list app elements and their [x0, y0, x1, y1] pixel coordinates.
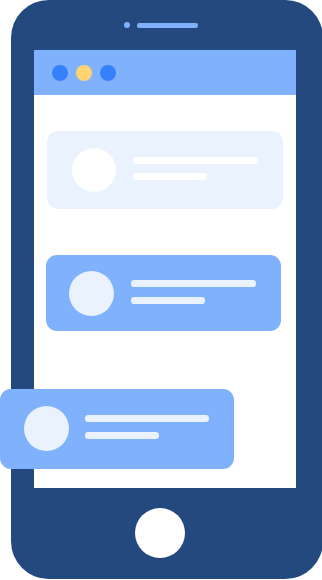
button[interactable]: List item three — [0, 389, 234, 469]
button[interactable]: List item two — [46, 255, 281, 331]
button[interactable]: List item one — [47, 131, 283, 209]
button[interactable]: Top app bar — [34, 50, 296, 95]
button[interactable]: Home — [135, 508, 185, 558]
